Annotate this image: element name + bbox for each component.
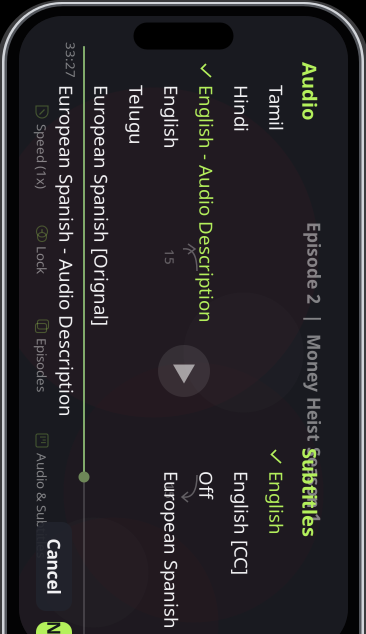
button[interactable]: Forward 15 seconds	[283, 357, 315, 387]
staticText: English [CC]	[282, 302, 366, 327]
staticText: 15	[60, 377, 76, 395]
staticText: English - Audio Description	[0, 337, 134, 362]
staticText: Subtitles	[259, 233, 348, 259]
staticText: Lock	[57, 505, 85, 523]
button[interactable]: Tamil	[0, 262, 125, 297]
staticText: European Spanish [cc]	[282, 372, 366, 397]
button[interactable]: Lock	[37, 502, 81, 526]
button[interactable]: Cancel	[333, 484, 366, 520]
staticText: 15	[294, 377, 310, 395]
button[interactable]: English	[259, 262, 366, 297]
button[interactable]: Play	[156, 346, 208, 398]
button[interactable]: Telugu	[0, 402, 125, 437]
button[interactable]: English [CC]	[259, 297, 366, 332]
button[interactable]: Rewind 15 seconds	[55, 357, 87, 387]
staticText: English	[282, 267, 346, 292]
button[interactable]: European Spanish [Orignal]	[0, 437, 125, 472]
button[interactable]: Audio & Subtitles	[244, 502, 340, 526]
staticText: Cancel	[349, 490, 366, 513]
button[interactable]: English - Audio Description	[0, 332, 125, 367]
staticText: Episodes	[149, 505, 203, 523]
staticText: European Spanish - Audio Description	[0, 477, 228, 502]
button[interactable]: Hindi	[0, 297, 125, 332]
staticText: Audio & Subtitles	[264, 505, 366, 523]
staticText: European Spanish [Orignal]	[0, 442, 137, 467]
button[interactable]: European Spanish - Audio Description	[0, 472, 125, 507]
staticText: Episode 2 | Money Heist Season 1	[33, 230, 334, 253]
button[interactable]: English	[0, 367, 125, 402]
button[interactable]: Off	[259, 332, 366, 367]
button[interactable]: European Spanish [cc]	[259, 367, 366, 402]
staticText: Off	[282, 337, 310, 362]
button[interactable]: Episodes	[129, 502, 195, 526]
